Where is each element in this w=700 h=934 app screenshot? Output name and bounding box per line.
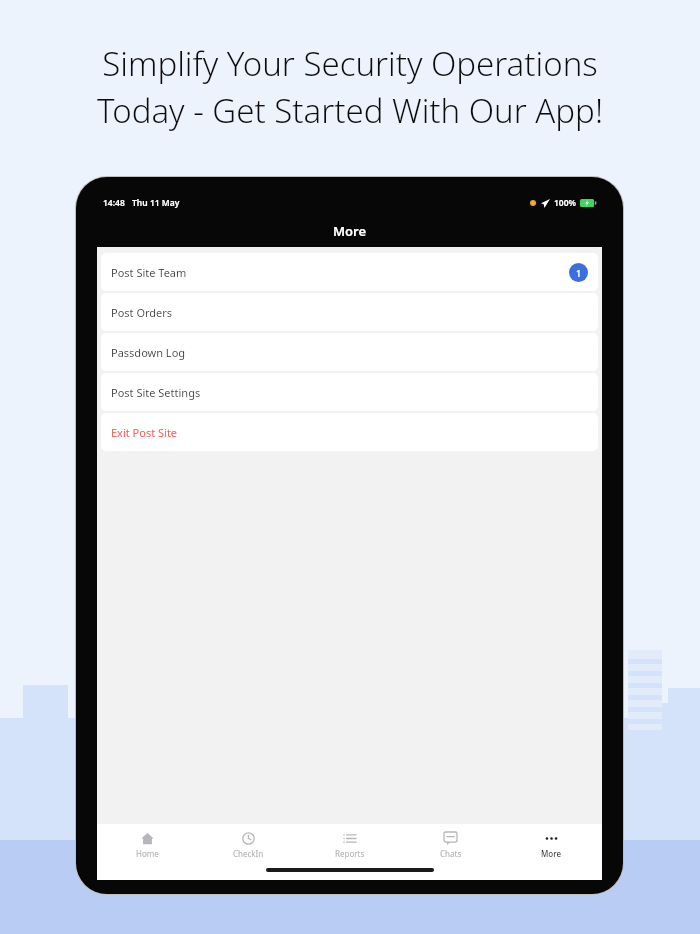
other: Home [141,832,154,845]
staticText: 1 [576,267,582,279]
staticText: More [541,848,562,859]
staticText: Exit Post Site [111,425,178,440]
staticText: Post Site Team [111,265,187,280]
button[interactable]: CheckIn [198,824,299,866]
staticText: Thu 11 May [132,197,180,209]
staticText: CheckIn [233,848,264,859]
staticText: Passdown Log [111,345,186,360]
button[interactable]: Home [97,824,198,866]
button[interactable]: Post Orders [101,293,598,331]
button[interactable]: Reports [299,824,400,866]
staticText: Chats [440,848,462,859]
button[interactable]: Chats [400,824,501,866]
staticText: More [333,222,367,240]
other: Chats [444,832,457,845]
button[interactable]: Exit Post Site [101,413,598,451]
other: More [545,832,558,845]
other: Reports [343,832,356,845]
staticText: Post Site Settings [111,385,201,400]
button[interactable]: Post Site Settings [101,373,598,411]
button[interactable]: Post Site Team [101,253,598,291]
staticText: Home [136,848,159,859]
staticText: Post Orders [111,305,173,320]
other: CheckIn [242,832,255,845]
staticText: 14:48 [103,197,125,209]
staticText: 100% [554,197,577,209]
button[interactable]: Passdown Log [101,333,598,371]
staticText: Reports [335,848,365,859]
button[interactable]: More [501,824,602,866]
staticText: Simplify Your Security Operations Today … [97,41,603,133]
